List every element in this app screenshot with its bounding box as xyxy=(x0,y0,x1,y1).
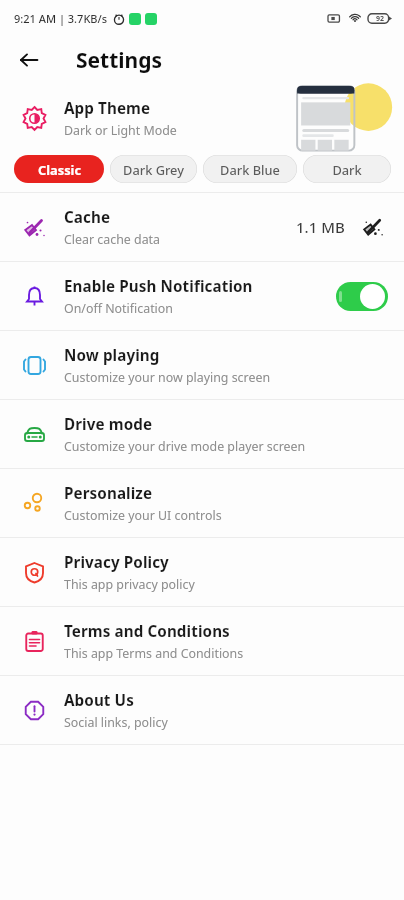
staticText: Terms and Conditions xyxy=(64,621,230,642)
staticText: Customize your UI controls xyxy=(64,507,222,524)
staticText: Settings xyxy=(76,46,163,75)
staticText: Dark Grey xyxy=(123,161,184,178)
staticText: App Theme xyxy=(64,98,151,119)
button[interactable]: Personalize xyxy=(0,469,404,537)
button[interactable]: Dark Grey xyxy=(110,155,197,183)
staticText: Enable Push Notification xyxy=(64,276,253,297)
staticText: Classic xyxy=(38,161,81,178)
staticText: Clear cache data xyxy=(64,231,161,248)
staticText: 92 xyxy=(376,14,385,24)
button[interactable]: Dark xyxy=(303,155,391,183)
staticText: Social links, policy xyxy=(64,714,168,731)
staticText: Dark xyxy=(332,161,362,178)
button[interactable]: Drive mode xyxy=(0,400,404,468)
staticText: Privacy Policy xyxy=(64,552,169,573)
button[interactable]: Clear cache xyxy=(358,212,388,242)
button[interactable]: Privacy Policy xyxy=(0,538,404,606)
button[interactable]: About Us xyxy=(0,676,404,744)
staticText: This app privacy policy xyxy=(64,576,195,593)
staticText: About Us xyxy=(64,690,134,711)
button[interactable]: Toggle push notification xyxy=(336,282,388,311)
staticText: 1.1 MB xyxy=(296,217,345,237)
staticText: On/off Notification xyxy=(64,300,173,317)
staticText: Dark Blue xyxy=(220,161,280,178)
button[interactable]: Classic xyxy=(14,155,104,183)
staticText: This app Terms and Conditions xyxy=(64,645,244,662)
button[interactable]: Enable Push Notification xyxy=(0,262,404,330)
button[interactable]: Cache xyxy=(0,193,404,261)
staticText: Now playing xyxy=(64,345,160,366)
staticText: Personalize xyxy=(64,483,153,504)
staticText: Cache xyxy=(64,207,111,228)
staticText: 9:21 AM | 3.7KB/s xyxy=(14,11,108,26)
button[interactable]: Terms and Conditions xyxy=(0,607,404,675)
button[interactable]: App Theme xyxy=(0,84,404,152)
button[interactable]: Dark Blue xyxy=(203,155,297,183)
button[interactable]: Back xyxy=(12,43,46,77)
staticText: Dark or Light Mode xyxy=(64,122,177,139)
staticText: Drive mode xyxy=(64,414,153,435)
button[interactable]: Now playing xyxy=(0,331,404,399)
staticText: Customize your drive mode player screen xyxy=(64,438,306,455)
staticText: Customize your now playing screen xyxy=(64,369,271,386)
